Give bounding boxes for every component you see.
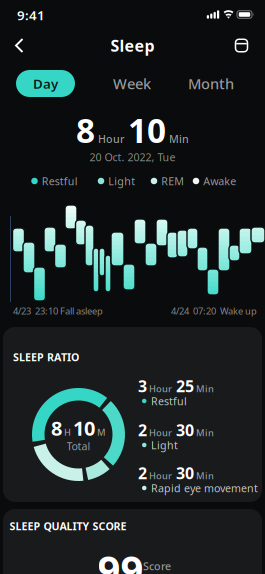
staticText: SLEEP QUALITY SCORE xyxy=(9,519,126,533)
staticText: 30 xyxy=(176,462,194,484)
button[interactable]: Calendar xyxy=(235,39,247,52)
staticText: Min xyxy=(166,132,189,146)
staticText: Hour xyxy=(95,132,128,146)
staticText: Sleep xyxy=(110,35,154,56)
staticText: 2 xyxy=(138,462,147,484)
staticText: Restful xyxy=(151,394,187,408)
staticText: 25 xyxy=(176,375,194,397)
staticText: Awake xyxy=(203,174,236,188)
staticText: 3 xyxy=(138,375,147,397)
staticText: Hour xyxy=(147,382,176,395)
button[interactable]: Day xyxy=(16,70,75,97)
button[interactable]: Back xyxy=(12,37,28,54)
staticText: 99 xyxy=(97,542,143,574)
staticText: Week xyxy=(113,74,151,93)
staticText: 10 xyxy=(73,415,95,441)
staticText: Day xyxy=(33,75,58,92)
staticText: Hour xyxy=(147,426,176,439)
staticText: H xyxy=(62,426,73,438)
staticText: Light xyxy=(108,174,135,188)
staticText: 4/24 07:20 Wake up xyxy=(171,305,257,317)
staticText: 2 xyxy=(138,419,147,441)
staticText: 20 Oct. 2022, Tue xyxy=(89,150,175,164)
staticText: 30 xyxy=(176,419,194,441)
staticText: Rapid eye movement xyxy=(151,481,258,495)
staticText: Restful xyxy=(42,174,78,188)
staticText: SLEEP RATIO xyxy=(13,350,79,364)
staticText: Hour xyxy=(147,469,176,482)
staticText: Month xyxy=(188,74,234,93)
staticText: Total xyxy=(66,439,90,453)
staticText: Min xyxy=(194,382,214,395)
staticText: Min xyxy=(194,469,214,482)
staticText: 8 xyxy=(76,108,95,152)
button[interactable]: Week xyxy=(113,74,151,93)
staticText: 10 xyxy=(128,108,166,152)
staticText: Light xyxy=(151,438,178,452)
staticText: 9:41 xyxy=(17,6,45,24)
staticText: 4/23 23:10 Fall asleep xyxy=(13,305,103,317)
staticText: Score xyxy=(143,559,171,573)
button[interactable]: Month xyxy=(188,74,234,93)
staticText: 8 xyxy=(51,415,62,441)
staticText: REM xyxy=(161,174,184,188)
staticText: Min xyxy=(194,426,214,439)
staticText: M xyxy=(95,426,106,438)
